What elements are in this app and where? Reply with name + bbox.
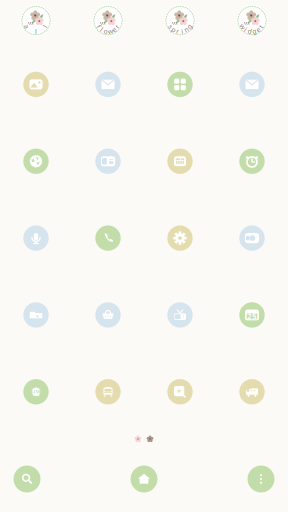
button[interactable]: Bus [216, 353, 288, 430]
button[interactable]: Recorder [0, 200, 72, 276]
button[interactable]: Shop [72, 276, 144, 353]
button[interactable]: Camera [216, 200, 288, 276]
button[interactable]: News [72, 123, 144, 200]
button[interactable]: Calculator [144, 123, 216, 200]
staticText: l [101, 25, 103, 34]
staticText: t [260, 22, 263, 31]
staticText: i [181, 27, 183, 36]
button[interactable]: Files [0, 276, 72, 353]
button[interactable]: Train [72, 353, 144, 430]
button[interactable]: Search [0, 459, 54, 499]
button[interactable]: Calendar [216, 276, 288, 353]
button[interactable]: Photos [0, 46, 72, 123]
staticText: l [35, 27, 37, 36]
staticText: LINE [31, 389, 40, 394]
staticText: r [176, 27, 179, 36]
button[interactable]: Phone [72, 200, 144, 276]
button[interactable]: Flower widget [72, 0, 144, 43]
staticText: d [248, 27, 252, 36]
staticText: o [104, 27, 108, 36]
button[interactable]: Apps [144, 46, 216, 123]
staticText: w [240, 22, 245, 31]
staticText: a [25, 22, 29, 31]
staticText: p [172, 25, 176, 34]
staticText: n [184, 25, 188, 34]
button[interactable]: Home [117, 459, 171, 499]
staticText: i [245, 25, 247, 34]
button[interactable]: All widget [0, 0, 72, 43]
button[interactable]: Gmail [216, 46, 288, 123]
button[interactable]: Spring widget [144, 0, 216, 43]
staticText: 25 [247, 311, 257, 322]
button[interactable]: More [234, 459, 288, 499]
button[interactable]: Photo editor [144, 353, 216, 430]
staticText: l [44, 22, 46, 31]
staticText: f [98, 22, 100, 31]
staticText: e [256, 25, 260, 34]
button[interactable]: Widget [216, 0, 288, 43]
button[interactable]: Clock [216, 123, 288, 200]
button[interactable]: TV [144, 276, 216, 353]
staticText: r [116, 22, 119, 31]
button[interactable]: Mail [72, 46, 144, 123]
staticText: s [169, 22, 172, 31]
staticText: g [252, 27, 256, 36]
button[interactable]: Settings [144, 200, 216, 276]
staticText: e [112, 25, 116, 34]
button[interactable]: Browser [0, 123, 72, 200]
staticText: w [108, 27, 113, 36]
staticText: g [187, 22, 191, 31]
button[interactable]: LINE [0, 353, 72, 430]
